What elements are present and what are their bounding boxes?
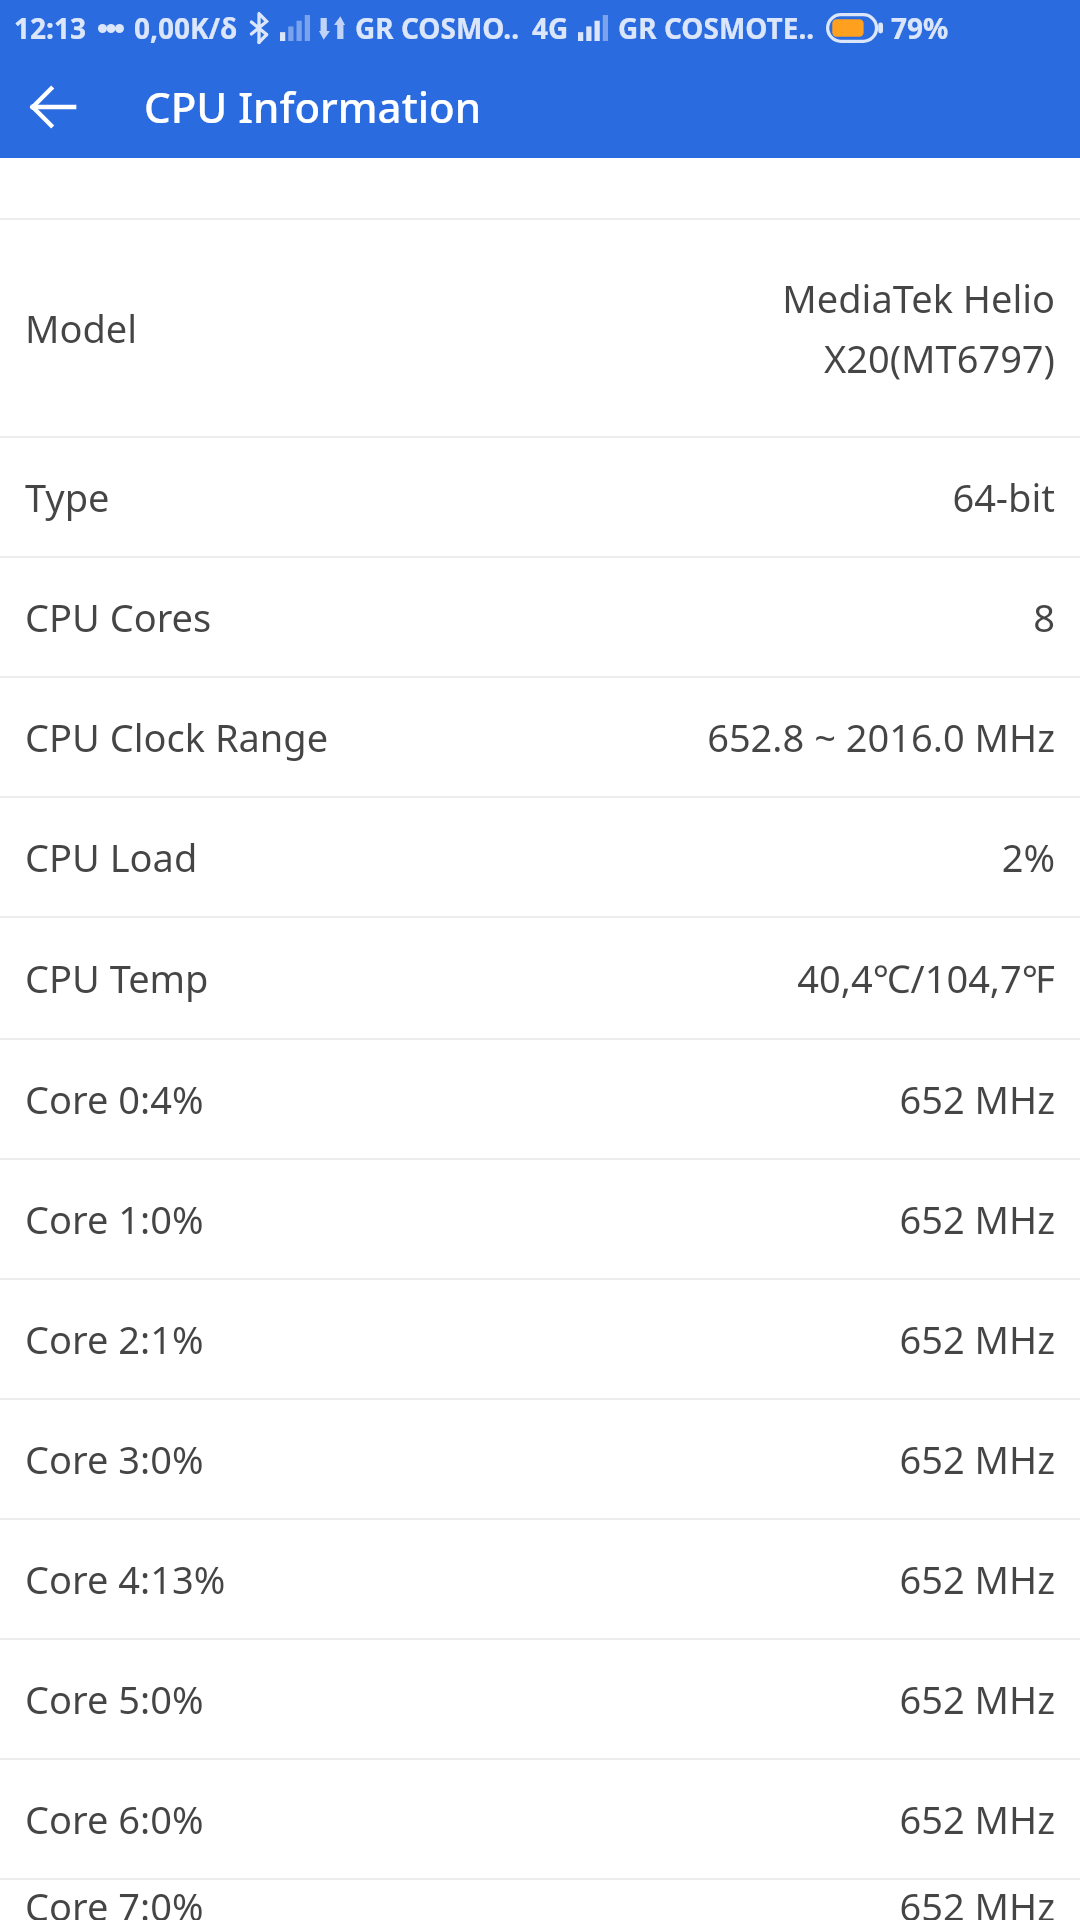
staticText: CPU Clock Range bbox=[25, 711, 329, 763]
button[interactable]: CPU Cores bbox=[0, 558, 1080, 676]
staticText: Core 7:0% bbox=[25, 1880, 204, 1920]
staticText: 79% bbox=[891, 9, 949, 47]
staticText: 652 MHz bbox=[899, 1553, 1055, 1605]
staticText: 652 MHz bbox=[899, 1880, 1055, 1920]
staticText: 4G bbox=[532, 9, 569, 47]
staticText: 652 MHz bbox=[899, 1673, 1055, 1725]
staticText: CPU Information bbox=[144, 78, 482, 135]
staticText: 12:13 bbox=[14, 9, 86, 47]
button[interactable]: CPU Clock Range bbox=[0, 678, 1080, 796]
staticText: Core 2:1% bbox=[25, 1313, 204, 1365]
staticText: 8 bbox=[1033, 591, 1055, 643]
button[interactable]: CPU Temp bbox=[0, 918, 1080, 1038]
staticText: MediaTek Helio bbox=[782, 272, 1055, 324]
staticText: Core 0:4% bbox=[25, 1073, 204, 1125]
staticText: GR COSMO.. bbox=[355, 9, 520, 47]
staticText: CPU Cores bbox=[25, 591, 212, 643]
button[interactable]: Core 4:13% bbox=[0, 1520, 1080, 1638]
staticText: 652 MHz bbox=[899, 1793, 1055, 1845]
staticText: 40,4℃/104,7℉ bbox=[797, 952, 1055, 1004]
staticText: 2% bbox=[1001, 831, 1055, 883]
staticText: 652 MHz bbox=[899, 1073, 1055, 1125]
staticText: CPU Temp bbox=[25, 952, 209, 1004]
button[interactable]: Core 7:0% bbox=[0, 1880, 1080, 1920]
button[interactable]: Core 3:0% bbox=[0, 1400, 1080, 1518]
staticText: 652.8 ~ 2016.0 MHz bbox=[707, 711, 1055, 763]
staticText: Core 5:0% bbox=[25, 1673, 204, 1725]
button[interactable]: Model bbox=[0, 220, 1080, 436]
staticText: CPU Load bbox=[25, 831, 198, 883]
button[interactable]: Core 2:1% bbox=[0, 1280, 1080, 1398]
staticText: 652 MHz bbox=[899, 1313, 1055, 1365]
button[interactable]: Type bbox=[0, 438, 1080, 556]
staticText: Type bbox=[25, 471, 110, 523]
staticText: Core 4:13% bbox=[25, 1553, 226, 1605]
button[interactable]: Core 5:0% bbox=[0, 1640, 1080, 1758]
button[interactable]: Core 0:4% bbox=[0, 1040, 1080, 1158]
button[interactable]: CPU Load bbox=[0, 798, 1080, 916]
button[interactable]: Back bbox=[0, 55, 106, 158]
staticText: 64-bit bbox=[952, 471, 1055, 523]
button[interactable]: Core 1:0% bbox=[0, 1160, 1080, 1278]
staticText: Core 6:0% bbox=[25, 1793, 204, 1845]
button[interactable]: Core 6:0% bbox=[0, 1760, 1080, 1878]
staticText: 0,00K/δ bbox=[134, 9, 238, 47]
staticText: 652 MHz bbox=[899, 1193, 1055, 1245]
staticText: Model bbox=[25, 302, 138, 354]
staticText: GR COSMOTE.. bbox=[618, 9, 815, 47]
staticText: Core 3:0% bbox=[25, 1433, 204, 1485]
staticText: Core 1:0% bbox=[25, 1193, 204, 1245]
staticText: X20(MT6797) bbox=[823, 332, 1055, 384]
staticText: 652 MHz bbox=[899, 1433, 1055, 1485]
